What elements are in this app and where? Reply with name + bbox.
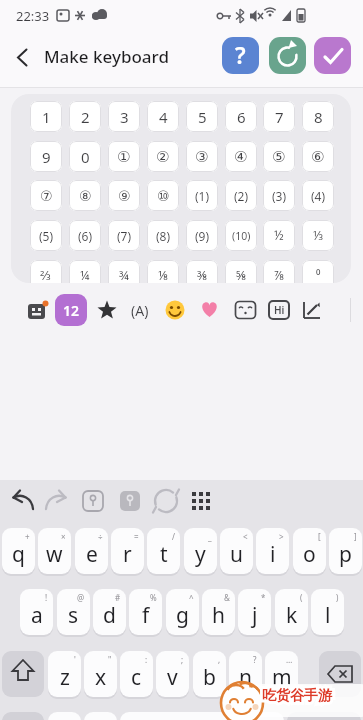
- button[interactable]: 6: [225, 101, 257, 132]
- button[interactable]: r: [111, 528, 144, 574]
- button[interactable]: 1: [30, 101, 62, 132]
- button[interactable]: z: [48, 651, 81, 697]
- button[interactable]: 7: [263, 101, 295, 132]
- button[interactable]: [234, 299, 257, 321]
- button[interactable]: [48, 712, 81, 720]
- button[interactable]: ⑨: [108, 180, 140, 211]
- button[interactable]: ⑥: [302, 141, 334, 172]
- button[interactable]: l: [311, 589, 344, 635]
- button[interactable]: [251, 712, 284, 720]
- button[interactable]: (6): [69, 220, 101, 251]
- button[interactable]: [199, 299, 220, 320]
- button[interactable]: [6, 44, 34, 72]
- button[interactable]: (5): [30, 220, 62, 251]
- staticText: a: [31, 601, 43, 630]
- button[interactable]: (8): [147, 220, 179, 251]
- button[interactable]: ③: [186, 141, 218, 172]
- button[interactable]: b: [193, 651, 226, 697]
- button[interactable]: ⑦: [30, 180, 62, 211]
- button[interactable]: 9: [30, 141, 62, 172]
- button[interactable]: i: [256, 528, 289, 574]
- button[interactable]: 5: [186, 101, 218, 132]
- button[interactable]: (3): [263, 180, 295, 211]
- button[interactable]: m: [265, 651, 298, 697]
- button[interactable]: (9): [186, 220, 218, 251]
- button[interactable]: 12: [55, 294, 87, 326]
- button[interactable]: ②: [147, 141, 179, 172]
- button[interactable]: ½: [263, 220, 295, 251]
- button[interactable]: ?: [222, 37, 259, 74]
- button[interactable]: k: [275, 589, 308, 635]
- button[interactable]: ⑧: [69, 180, 101, 211]
- button[interactable]: w: [38, 528, 71, 574]
- button[interactable]: s: [57, 589, 90, 635]
- button[interactable]: ⅜: [186, 260, 218, 283]
- button[interactable]: e: [75, 528, 108, 574]
- button[interactable]: Hi: [268, 300, 290, 320]
- button[interactable]: ¾: [108, 260, 140, 283]
- button[interactable]: [120, 712, 247, 720]
- button[interactable]: [96, 299, 118, 321]
- button[interactable]: (4): [302, 180, 334, 211]
- staticText: (8): [156, 228, 171, 244]
- button[interactable]: ⅔: [30, 260, 62, 283]
- button[interactable]: n: [229, 651, 262, 697]
- button[interactable]: o: [293, 528, 326, 574]
- button[interactable]: [165, 300, 185, 320]
- button[interactable]: ¼: [69, 260, 101, 283]
- button[interactable]: (2): [225, 180, 257, 211]
- button[interactable]: ⅓: [302, 220, 334, 251]
- button[interactable]: j: [238, 589, 271, 635]
- button[interactable]: (A): [126, 299, 154, 321]
- button[interactable]: q: [2, 528, 35, 574]
- button[interactable]: 8: [302, 101, 334, 132]
- button[interactable]: ⅝: [225, 260, 257, 283]
- button[interactable]: h: [202, 589, 235, 635]
- button[interactable]: f: [129, 589, 162, 635]
- button[interactable]: ⅛: [147, 260, 179, 283]
- button[interactable]: ④: [225, 141, 257, 172]
- staticText: /: [172, 531, 175, 542]
- button[interactable]: ⁰: [302, 260, 334, 283]
- button[interactable]: [26, 298, 50, 322]
- staticText: @: [77, 592, 85, 603]
- button[interactable]: y: [184, 528, 217, 574]
- button[interactable]: 3: [108, 101, 140, 132]
- staticText: ⑧: [79, 188, 92, 204]
- button[interactable]: ⅞: [263, 260, 295, 283]
- button[interactable]: u: [220, 528, 253, 574]
- button[interactable]: [269, 37, 306, 74]
- staticText: ^: [189, 592, 194, 603]
- staticText: 1: [42, 107, 51, 127]
- button[interactable]: (7): [108, 220, 140, 251]
- button[interactable]: 0: [69, 141, 101, 172]
- button[interactable]: 4: [147, 101, 179, 132]
- button[interactable]: v: [156, 651, 189, 697]
- staticText: v: [167, 663, 178, 692]
- button[interactable]: [319, 651, 361, 697]
- button[interactable]: (1): [186, 180, 218, 211]
- button[interactable]: ①: [108, 141, 140, 172]
- staticText: ⑨: [118, 188, 131, 204]
- staticText: z: [60, 663, 70, 692]
- button[interactable]: ⑩: [147, 180, 179, 211]
- staticText: 7: [275, 107, 284, 127]
- button[interactable]: 2: [69, 101, 101, 132]
- button[interactable]: [314, 37, 351, 74]
- button[interactable]: [301, 299, 323, 321]
- staticText: f: [142, 601, 150, 630]
- staticText: ⅞: [274, 267, 285, 283]
- button[interactable]: t: [147, 528, 180, 574]
- button[interactable]: d: [93, 589, 126, 635]
- button[interactable]: [287, 712, 361, 720]
- button[interactable]: [84, 712, 117, 720]
- button[interactable]: [2, 651, 44, 697]
- button[interactable]: ⑤: [263, 141, 295, 172]
- button[interactable]: g: [166, 589, 199, 635]
- button[interactable]: (10): [225, 220, 257, 251]
- button[interactable]: c: [120, 651, 153, 697]
- button[interactable]: a: [20, 589, 53, 635]
- button[interactable]: x: [84, 651, 117, 697]
- button[interactable]: [2, 712, 44, 720]
- button[interactable]: p: [329, 528, 362, 574]
